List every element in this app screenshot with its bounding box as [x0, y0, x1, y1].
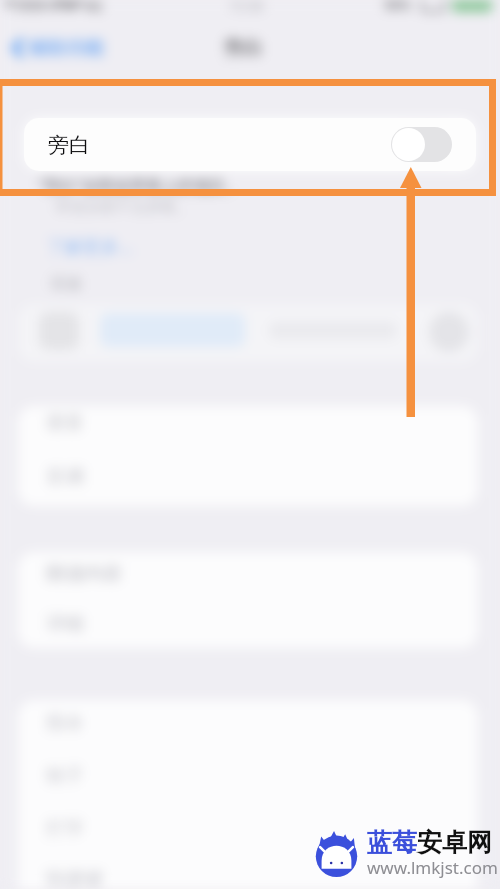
staticText: 旁白 — [48, 134, 90, 160]
staticText: 快捷键 — [46, 867, 103, 889]
staticText: 音调 — [46, 465, 84, 489]
staticText: 旁白 — [48, 132, 90, 158]
staticText: 4G — [84, 0, 103, 15]
staticText: 详细 — [46, 612, 84, 636]
staticText: 转子 — [46, 764, 84, 788]
staticText: 语速 — [50, 274, 82, 294]
staticText: 中国移动 — [4, 0, 60, 14]
staticText: 98% — [384, 0, 411, 14]
staticText: 即使你看不见屏幕。 — [56, 198, 191, 217]
button[interactable]: Toggle VoiceOver — [391, 127, 452, 162]
staticText: 辅助功能 — [28, 36, 104, 60]
staticText: www.lmkjst.com — [367, 856, 498, 879]
staticText: 语音 — [46, 411, 84, 435]
staticText: 了解更多… — [47, 234, 134, 259]
staticText: “旁白”会朗读屏幕上的项目。 — [38, 174, 242, 196]
button[interactable]: 旁白 — [24, 118, 476, 171]
staticText: 指令 — [46, 711, 84, 735]
staticText: 朗读内容 — [46, 562, 122, 586]
staticText: 蓝莓 — [367, 827, 417, 858]
other: Highlight annotation — [0, 0, 500, 889]
staticText: 安卓网 — [417, 827, 492, 858]
staticText: 旁白 — [224, 35, 263, 60]
